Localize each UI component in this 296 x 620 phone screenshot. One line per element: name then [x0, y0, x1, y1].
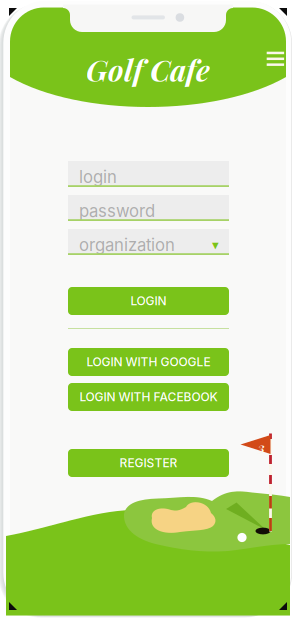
staticText: password	[79, 201, 155, 221]
staticText: LOGIN WITH GOOGLE	[86, 355, 210, 369]
button[interactable]: login	[68, 161, 229, 187]
staticText: Golf Cafe	[86, 50, 210, 89]
button[interactable]: REGISTER	[68, 449, 229, 477]
staticText: ▾	[212, 237, 219, 253]
staticText: LOGIN WITH FACEBOOK	[79, 390, 217, 404]
button[interactable]: organization	[68, 229, 229, 255]
button[interactable]: LOGIN WITH GOOGLE	[68, 348, 229, 376]
staticText: REGISTER	[119, 456, 177, 470]
button[interactable]: Menu	[258, 43, 293, 75]
staticText: login	[79, 167, 117, 187]
button[interactable]: LOGIN WITH FACEBOOK	[68, 383, 229, 411]
button[interactable]: password	[68, 195, 229, 221]
button[interactable]: LOGIN	[68, 287, 229, 315]
staticText: organization	[79, 235, 175, 255]
staticText: LOGIN	[130, 294, 166, 308]
staticText: 3	[258, 438, 265, 456]
